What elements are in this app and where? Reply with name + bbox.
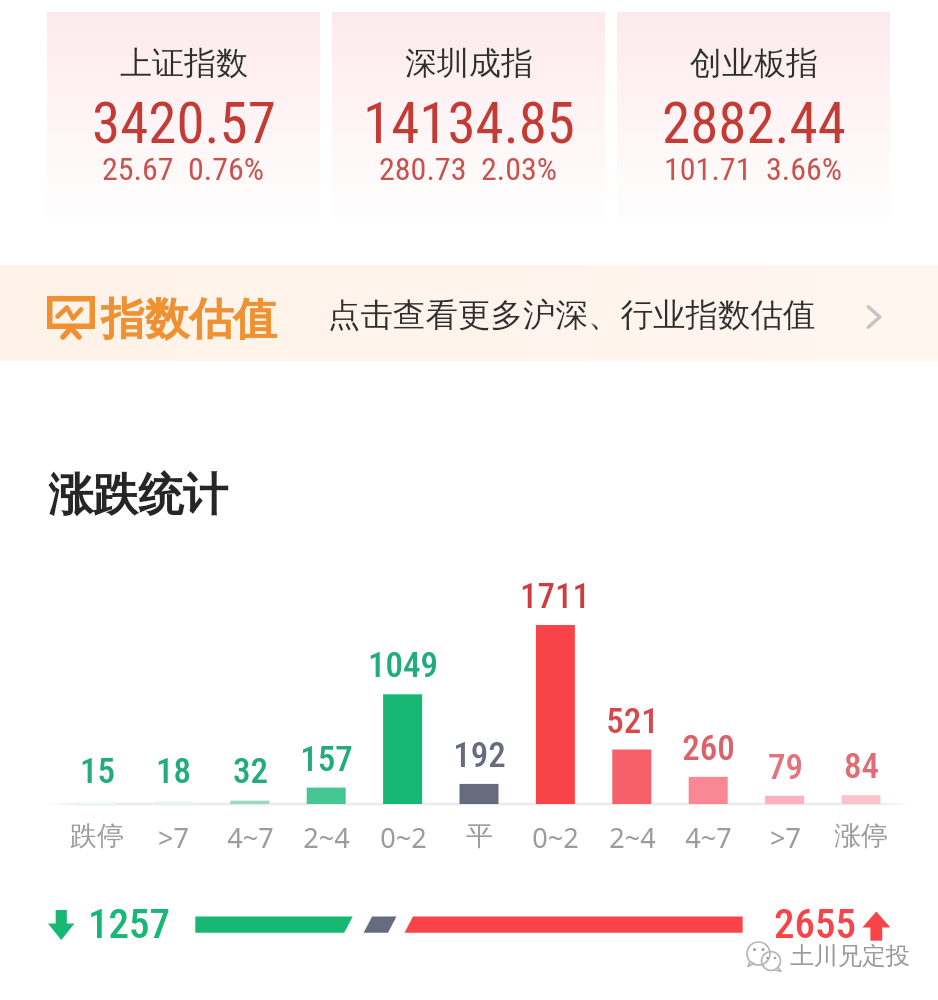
staticText: 上证指数 — [120, 43, 248, 83]
staticText: 2~4 — [303, 819, 350, 856]
button[interactable]: 创业板指 — [617, 12, 890, 220]
staticText: 1257 — [88, 900, 170, 948]
staticText: 260 — [682, 728, 735, 769]
button[interactable]: 上证指数 — [47, 12, 320, 220]
staticText: >7 — [158, 819, 189, 856]
staticText: 2882.44 — [662, 90, 846, 157]
staticText: 157 — [300, 739, 353, 780]
staticText: 深圳成指 — [405, 43, 533, 83]
staticText: 0.76% — [188, 150, 265, 188]
button[interactable]: View more index valuations — [851, 295, 895, 339]
staticText: 521 — [606, 701, 659, 742]
staticText: 跌停 — [70, 819, 124, 853]
staticText: 土川兄定投 — [790, 941, 910, 971]
staticText: 创业板指 — [690, 43, 818, 83]
staticText: 指数估值 — [101, 292, 277, 347]
staticText: 3420.57 — [92, 90, 276, 157]
staticText: 涨跌统计 — [48, 467, 228, 524]
staticText: 79 — [768, 747, 803, 788]
button[interactable]: 深圳成指 — [332, 12, 605, 220]
staticText: >7 — [770, 819, 801, 856]
staticText: 涨停 — [834, 819, 888, 853]
staticText: 3.66% — [766, 150, 843, 188]
staticText: 25.67 — [102, 150, 174, 188]
staticText: 101.71 — [664, 150, 752, 188]
staticText: 4~7 — [685, 819, 732, 856]
staticText: 192 — [453, 735, 506, 776]
staticText: 2655 — [774, 900, 856, 948]
staticText: 18 — [156, 751, 191, 792]
staticText: 15 — [80, 751, 115, 792]
staticText: 84 — [844, 746, 879, 787]
button[interactable]: 指数估值 — [0, 265, 938, 361]
staticText: 点击查看更多沪深、行业指数估值 — [328, 295, 816, 336]
staticText: 0~2 — [380, 819, 427, 856]
staticText: 4~7 — [227, 819, 274, 856]
staticText: 280.73 — [379, 150, 467, 188]
staticText: 2.03% — [481, 150, 558, 188]
staticText: 1049 — [368, 645, 438, 686]
staticText: 0~2 — [532, 819, 579, 856]
staticText: 1711 — [520, 576, 590, 617]
staticText: 2~4 — [609, 819, 656, 856]
staticText: 14134.85 — [363, 90, 575, 157]
staticText: 平 — [466, 819, 493, 853]
staticText: 32 — [233, 751, 268, 792]
